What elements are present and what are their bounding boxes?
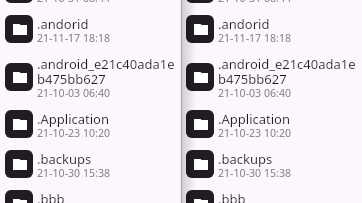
button[interactable]: .android_e21c40ada1eb475bb627	[181, 49, 361, 104]
staticText: 21-11-17 18:18	[218, 32, 292, 45]
staticText: .bbb	[218, 192, 246, 203]
staticText: .andorid	[218, 17, 270, 32]
button[interactable]: .andorid	[0, 9, 181, 49]
staticText: .android_e21c40ada1eb475bb627	[37, 57, 181, 87]
staticText: 21-10-23 10:20	[218, 127, 292, 140]
button[interactable]: .andorid	[181, 9, 361, 49]
button[interactable]: .android_e21c40ada1eb475bb627	[0, 49, 181, 104]
staticText: 21-10-23 10:20	[37, 127, 111, 140]
staticText: 21-10-03 06:40	[218, 87, 292, 100]
staticText: 21-10-30 15:38	[37, 167, 111, 180]
staticText: 21-10-31 08:44	[37, 0, 111, 5]
button[interactable]: .bbb	[0, 184, 181, 203]
button[interactable]: aaa	[0, 0, 181, 9]
button[interactable]: .Application	[181, 104, 361, 144]
staticText: 21-10-30 15:38	[218, 167, 292, 180]
staticText: .andorid	[37, 17, 89, 32]
button[interactable]: .backups	[0, 144, 181, 184]
staticText: .backups	[37, 152, 92, 167]
button[interactable]: aaa	[181, 0, 361, 9]
staticText: 21-10-03 06:40	[37, 87, 111, 100]
staticText: .bbb	[37, 192, 65, 203]
staticText: .android_e21c40ada1eb475bb627	[218, 57, 361, 87]
button[interactable]: .Application	[0, 104, 181, 144]
staticText: 21-11-17 18:18	[37, 32, 111, 45]
staticText: .Application	[37, 112, 109, 127]
staticText: .backups	[218, 152, 273, 167]
staticText: .Application	[218, 112, 290, 127]
button[interactable]: .backups	[181, 144, 361, 184]
staticText: 21-10-31 08:44	[218, 0, 292, 5]
button[interactable]: .bbb	[181, 184, 361, 203]
